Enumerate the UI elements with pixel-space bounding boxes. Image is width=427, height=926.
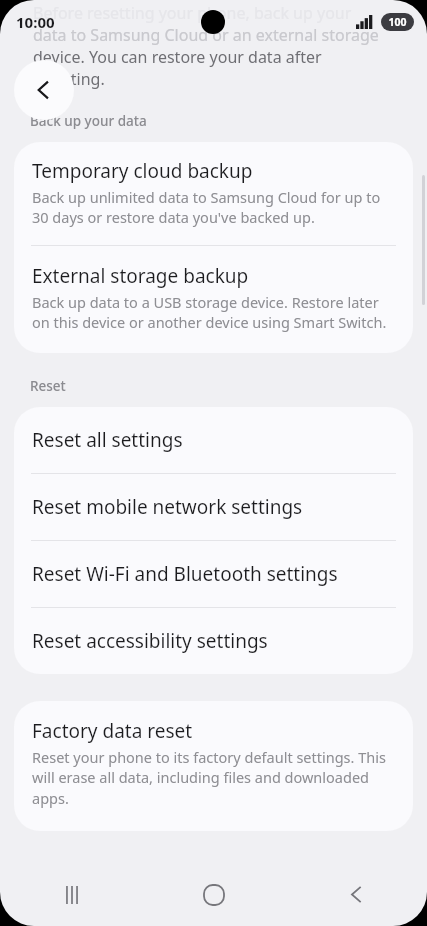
button[interactable]: Temporary cloud backup xyxy=(14,142,413,245)
staticText: resetting. xyxy=(33,68,105,90)
button[interactable]: Reset all settings xyxy=(14,407,413,473)
staticText: device. You can restore your data after xyxy=(33,46,322,68)
button[interactable]: Back xyxy=(14,60,74,120)
staticText: Reset all settings xyxy=(32,427,183,453)
staticText: 100 xyxy=(388,15,407,29)
button[interactable]: Recent apps xyxy=(0,863,143,926)
button[interactable]: Factory data reset xyxy=(14,701,413,831)
staticText: Factory data reset xyxy=(32,718,193,744)
staticText: 10:00 xyxy=(16,12,55,32)
staticText: Reset accessibility settings xyxy=(32,628,268,654)
staticText: Back up data to a USB storage device. Re… xyxy=(32,292,391,333)
staticText: data to Samsung Cloud or an external sto… xyxy=(33,24,379,46)
staticText: Back up unlimited data to Samsung Cloud … xyxy=(32,187,391,228)
button[interactable]: Home xyxy=(143,863,285,926)
button[interactable]: Reset accessibility settings xyxy=(14,608,413,674)
button[interactable]: External storage backup xyxy=(14,246,413,353)
button[interactable]: Back xyxy=(285,863,427,926)
button[interactable]: Reset Wi-Fi and Bluetooth settings xyxy=(14,541,413,607)
staticText: Temporary cloud backup xyxy=(32,158,253,184)
staticText: Reset your phone to its factory default … xyxy=(32,747,391,809)
staticText: Before resetting your phone, back up you… xyxy=(33,2,352,24)
staticText: Reset Wi-Fi and Bluetooth settings xyxy=(32,561,338,587)
staticText: Reset mobile network settings xyxy=(32,494,303,520)
staticText: Reset xyxy=(30,377,66,395)
staticText: External storage backup xyxy=(32,263,249,289)
staticText: Back up your data xyxy=(30,112,147,130)
button[interactable]: Reset mobile network settings xyxy=(14,474,413,540)
